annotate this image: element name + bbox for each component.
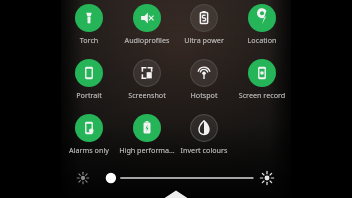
button[interactable]: Portrait (61, 59, 117, 105)
button[interactable]: Screenshot (119, 59, 175, 105)
button[interactable]: Ultra power (176, 4, 232, 50)
staticText: Invert colours (176, 145, 232, 155)
staticText: Portrait (61, 90, 117, 100)
staticText: Audioprofiles (119, 35, 175, 45)
button[interactable]: High performa… (119, 114, 175, 160)
button[interactable]: Location (234, 4, 290, 50)
button[interactable]: Torch (61, 4, 117, 50)
staticText: High performa… (119, 145, 175, 155)
button[interactable]: Collapse quick settings (163, 188, 189, 198)
button[interactable]: Lower brightness (74, 169, 92, 187)
staticText: Location (234, 35, 290, 45)
button[interactable]: Audioprofiles (119, 4, 175, 50)
button[interactable]: Hotspot (176, 59, 232, 105)
button[interactable]: Alarms only (61, 114, 117, 160)
staticText: Ultra power (176, 35, 232, 45)
staticText: Screen record (234, 90, 290, 100)
staticText: Alarms only (61, 145, 117, 155)
button[interactable]: Screen record (234, 59, 290, 105)
button[interactable]: Invert colours (176, 114, 232, 160)
button[interactable]: Brightness slider (101, 169, 253, 187)
staticText: Hotspot (176, 90, 232, 100)
staticText: Torch (61, 35, 117, 45)
button[interactable]: Raise brightness (258, 169, 276, 187)
staticText: Screenshot (119, 90, 175, 100)
